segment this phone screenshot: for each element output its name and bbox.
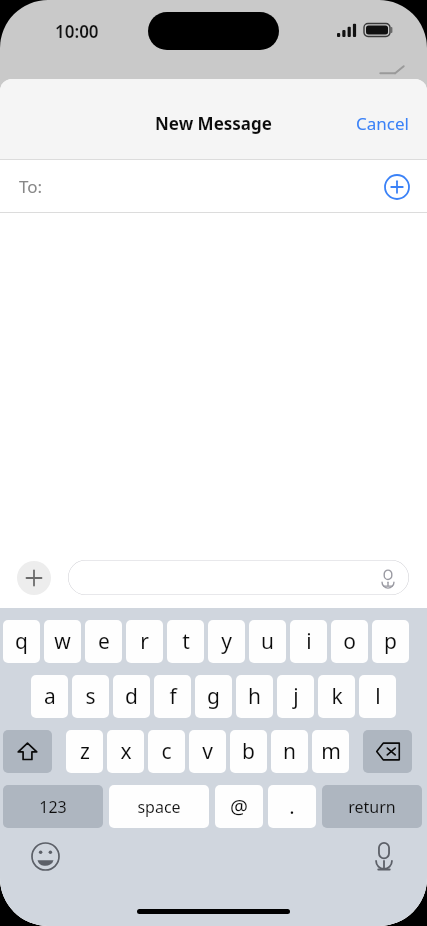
button[interactable]: b [230, 730, 267, 773]
button[interactable]: l [359, 675, 396, 718]
button[interactable]: Shift [3, 730, 52, 773]
staticText: w [54, 627, 71, 656]
button[interactable]: m [312, 730, 349, 773]
button[interactable]: z [66, 730, 103, 773]
button[interactable]: v [189, 730, 226, 773]
staticText: r [140, 627, 149, 656]
staticText: 10:00 [55, 20, 99, 43]
staticText: To: [19, 175, 43, 198]
button[interactable]: n [271, 730, 308, 773]
staticText: n [283, 737, 296, 766]
button[interactable]: t [167, 620, 204, 663]
staticText: 123 [39, 796, 67, 818]
button[interactable]: u [249, 620, 286, 663]
button[interactable]: j [277, 675, 314, 718]
staticText: s [85, 682, 96, 711]
staticText: v [202, 737, 213, 766]
button[interactable]: f [154, 675, 191, 718]
staticText: y [221, 627, 232, 656]
staticText: b [242, 737, 255, 766]
button[interactable]: Dictation [372, 841, 396, 871]
button[interactable]: return [322, 785, 422, 828]
button[interactable]: Dictate [68, 560, 409, 595]
button[interactable]: s [72, 675, 109, 718]
staticText: Cancel [356, 112, 409, 135]
staticText: o [343, 627, 356, 656]
staticText: @ [230, 793, 248, 820]
staticText: j [293, 682, 299, 711]
staticText: m [321, 737, 341, 766]
staticText: k [331, 682, 343, 711]
staticText: l [375, 682, 381, 711]
staticText: a [44, 682, 56, 711]
button[interactable]: To: [0, 160, 427, 213]
button[interactable]: 123 [3, 785, 103, 828]
button[interactable]: r [126, 620, 163, 663]
button[interactable]: Emoji [31, 842, 60, 871]
staticText: p [384, 627, 397, 656]
button[interactable]: a [31, 675, 68, 718]
button[interactable]: y [208, 620, 245, 663]
button[interactable]: i [290, 620, 327, 663]
staticText: t [182, 627, 190, 656]
button[interactable]: d [113, 675, 150, 718]
button[interactable]: p [372, 620, 409, 663]
button[interactable]: . [268, 785, 316, 828]
staticText: f [169, 682, 177, 711]
staticText: i [306, 627, 312, 656]
staticText: x [120, 737, 132, 766]
staticText: New Message [155, 112, 272, 135]
staticText: u [261, 627, 274, 656]
button[interactable]: h [236, 675, 273, 718]
staticText: z [80, 737, 90, 766]
staticText: e [98, 627, 110, 656]
button[interactable]: space [109, 785, 209, 828]
button[interactable]: q [3, 620, 40, 663]
button[interactable]: e [85, 620, 122, 663]
button[interactable]: Cancel [348, 106, 417, 141]
button[interactable]: c [148, 730, 185, 773]
button[interactable]: k [318, 675, 355, 718]
button[interactable]: Delete [363, 730, 412, 773]
button[interactable]: w [44, 620, 81, 663]
staticText: c [161, 737, 172, 766]
staticText: d [125, 682, 138, 711]
staticText: h [248, 682, 261, 711]
button[interactable]: x [107, 730, 144, 773]
staticText: q [15, 627, 28, 656]
staticText: . [289, 793, 295, 820]
staticText: return [348, 796, 396, 818]
staticText: g [207, 682, 220, 711]
staticText: space [137, 796, 181, 818]
button[interactable]: More options [17, 561, 51, 595]
button[interactable]: Dictate [379, 569, 397, 587]
button[interactable]: Add contact [384, 174, 410, 200]
button[interactable]: o [331, 620, 368, 663]
button[interactable]: g [195, 675, 232, 718]
button[interactable]: @ [215, 785, 263, 828]
